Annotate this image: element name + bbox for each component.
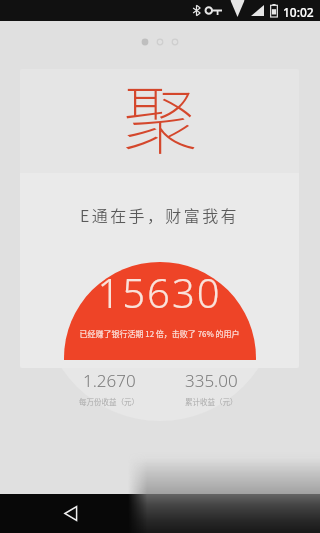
button[interactable]: Back — [55, 494, 87, 533]
staticText: E通在手，财富我有 — [20, 203, 299, 226]
staticText: 聚 — [123, 69, 197, 165]
staticText: 15630 — [20, 265, 299, 319]
staticText: 1.2670 — [83, 369, 136, 392]
staticText: 每万份收益（元） — [79, 396, 139, 407]
button[interactable]: 聚 — [20, 69, 299, 173]
staticText: 10:02 — [283, 4, 314, 20]
button[interactable]: 1.2670 — [54, 369, 164, 407]
staticText: 已经赚了银行活期 12 倍，击败了 76% 的用户 — [20, 328, 299, 340]
button[interactable]: 335.00 — [156, 369, 266, 407]
button[interactable]: E通在手，财富我有 — [20, 173, 299, 368]
staticText: 累计收益（元） — [185, 396, 238, 407]
staticText: 335.00 — [185, 369, 238, 392]
